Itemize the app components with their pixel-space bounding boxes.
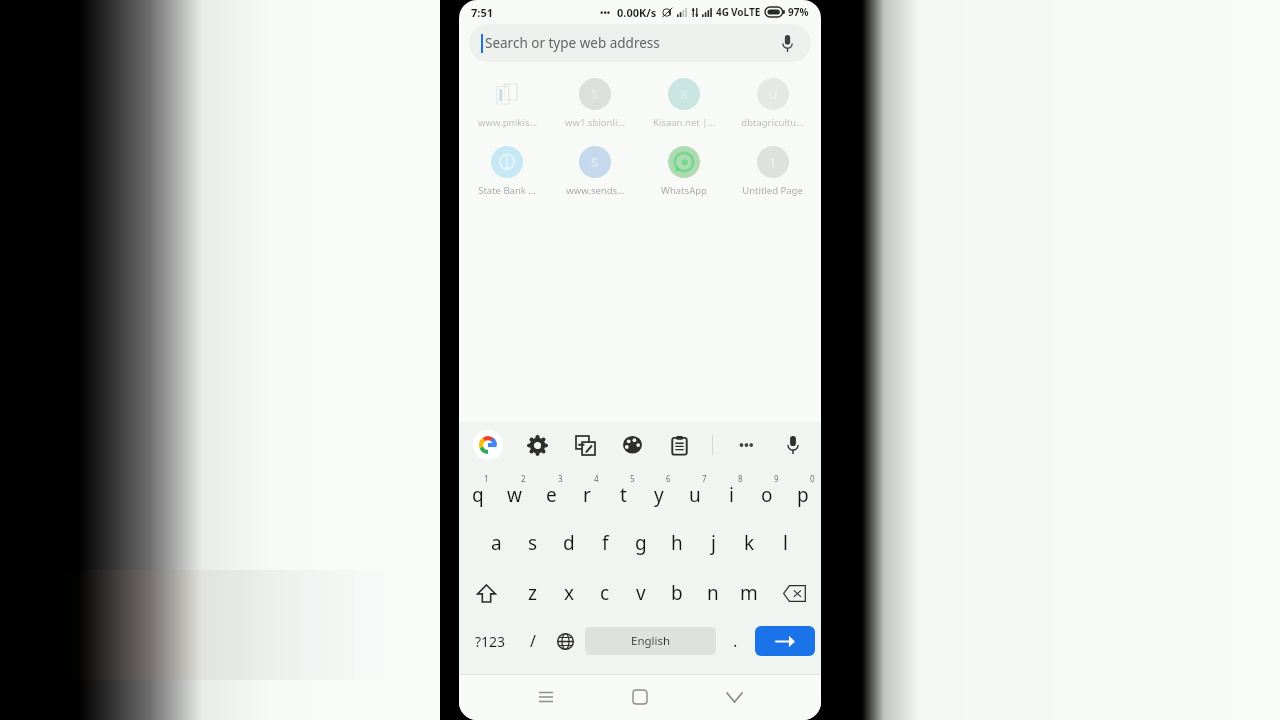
button[interactable]: 1 — [728, 144, 817, 199]
button[interactable]: j — [695, 518, 731, 568]
button[interactable]: l — [767, 518, 803, 568]
button[interactable]: . — [719, 618, 752, 664]
button[interactable]: e — [533, 468, 569, 518]
button[interactable]: Change language — [549, 618, 582, 664]
button[interactable]: r — [569, 468, 605, 518]
button[interactable]: Go — [755, 626, 815, 656]
staticText: 3 — [558, 473, 563, 484]
staticText: 1 — [484, 473, 489, 484]
button[interactable]: S — [551, 144, 639, 199]
staticText: 4G — [716, 5, 729, 19]
staticText: p — [797, 482, 809, 508]
button[interactable]: a — [478, 518, 515, 568]
button[interactable]: b — [659, 568, 695, 618]
button[interactable]: Voice input — [779, 431, 807, 459]
staticText: Kisaan.net |… — [653, 116, 715, 129]
staticText: q — [472, 482, 484, 508]
button[interactable]: Translate — [571, 431, 599, 459]
button[interactable]: x — [551, 568, 587, 618]
button[interactable]: English — [585, 627, 716, 655]
staticText: 6 — [666, 473, 671, 484]
button[interactable]: / — [516, 618, 549, 664]
staticText: v — [636, 580, 646, 606]
button[interactable]: v — [623, 568, 659, 618]
button[interactable]: WhatsApp — [639, 144, 728, 199]
button[interactable]: o — [749, 468, 785, 518]
button[interactable]: K — [639, 76, 728, 131]
staticText: 5 — [630, 473, 635, 484]
button[interactable]: h — [659, 518, 695, 568]
button[interactable]: m — [731, 568, 767, 618]
button[interactable]: z — [514, 568, 551, 618]
button[interactable]: w — [496, 468, 533, 518]
staticText: i — [729, 482, 734, 508]
staticText: m — [740, 580, 758, 606]
button[interactable]: Shift — [459, 568, 514, 618]
staticText: 1 — [769, 153, 777, 171]
staticText: ww1.sbionli… — [565, 116, 625, 129]
staticText: 0.00K/s — [617, 5, 657, 20]
staticText: Search or type web address — [485, 34, 660, 52]
staticText: Untitled Page — [742, 184, 803, 197]
staticText: www.pmkis… — [478, 116, 537, 129]
staticText: 97% — [788, 5, 809, 19]
staticText: s — [528, 530, 538, 556]
button[interactable]: n — [695, 568, 731, 618]
staticText: y — [654, 482, 664, 508]
button[interactable]: More options — [732, 431, 760, 459]
staticText: w — [507, 482, 522, 508]
staticText: r — [583, 482, 591, 508]
staticText: h — [671, 530, 683, 556]
staticText: ••• — [739, 436, 754, 454]
button[interactable]: u — [677, 468, 713, 518]
button[interactable]: y — [641, 468, 677, 518]
button[interactable]: f — [587, 518, 623, 568]
staticText: n — [707, 580, 719, 606]
staticText: 2 — [521, 473, 526, 484]
staticText: ••• — [600, 6, 611, 18]
button[interactable]: S — [551, 76, 639, 131]
button[interactable]: k — [731, 518, 767, 568]
staticText: 0 — [810, 473, 815, 484]
button[interactable]: Recent apps — [529, 680, 563, 714]
button[interactable]: Voice search — [775, 31, 799, 55]
button[interactable]: Google — [473, 430, 503, 460]
staticText: e — [546, 482, 557, 508]
button[interactable]: t — [605, 468, 641, 518]
button[interactable]: Hide keyboard — [717, 680, 751, 714]
button[interactable]: p — [785, 468, 821, 518]
button[interactable]: Backspace — [767, 568, 821, 618]
staticText: j — [711, 530, 716, 556]
staticText: d — [563, 530, 575, 556]
button[interactable]: Settings — [523, 431, 551, 459]
button[interactable]: Themes — [618, 431, 646, 459]
staticText: K — [680, 85, 689, 103]
button[interactable]: i — [713, 468, 749, 518]
button[interactable]: U — [728, 76, 817, 131]
button[interactable]: Search or type web address — [469, 24, 811, 62]
staticText: t — [620, 482, 627, 508]
button[interactable]: Clipboard — [665, 431, 693, 459]
staticText: ?123 — [475, 632, 506, 651]
staticText: State Bank … — [478, 184, 536, 197]
staticText: g — [635, 530, 647, 556]
button[interactable]: g — [623, 518, 659, 568]
button[interactable]: d — [551, 518, 587, 568]
staticText: a — [491, 530, 502, 556]
button[interactable]: ?123 — [465, 618, 516, 664]
button[interactable]: c — [587, 568, 623, 618]
button[interactable]: q — [459, 468, 496, 518]
staticText: o — [761, 482, 773, 508]
staticText: b — [671, 580, 683, 606]
staticText: / — [530, 630, 536, 652]
staticText: dbtagricultu… — [741, 116, 804, 129]
button[interactable]: www.pmkis… — [463, 76, 551, 131]
button[interactable]: State Bank … — [463, 144, 551, 199]
staticText: www.sends… — [566, 184, 625, 197]
staticText: x — [564, 580, 575, 606]
staticText: z — [528, 580, 537, 606]
button[interactable]: s — [515, 518, 551, 568]
staticText: WhatsApp — [661, 184, 707, 197]
button[interactable]: Home — [623, 680, 657, 714]
staticText: 9 — [774, 473, 779, 484]
